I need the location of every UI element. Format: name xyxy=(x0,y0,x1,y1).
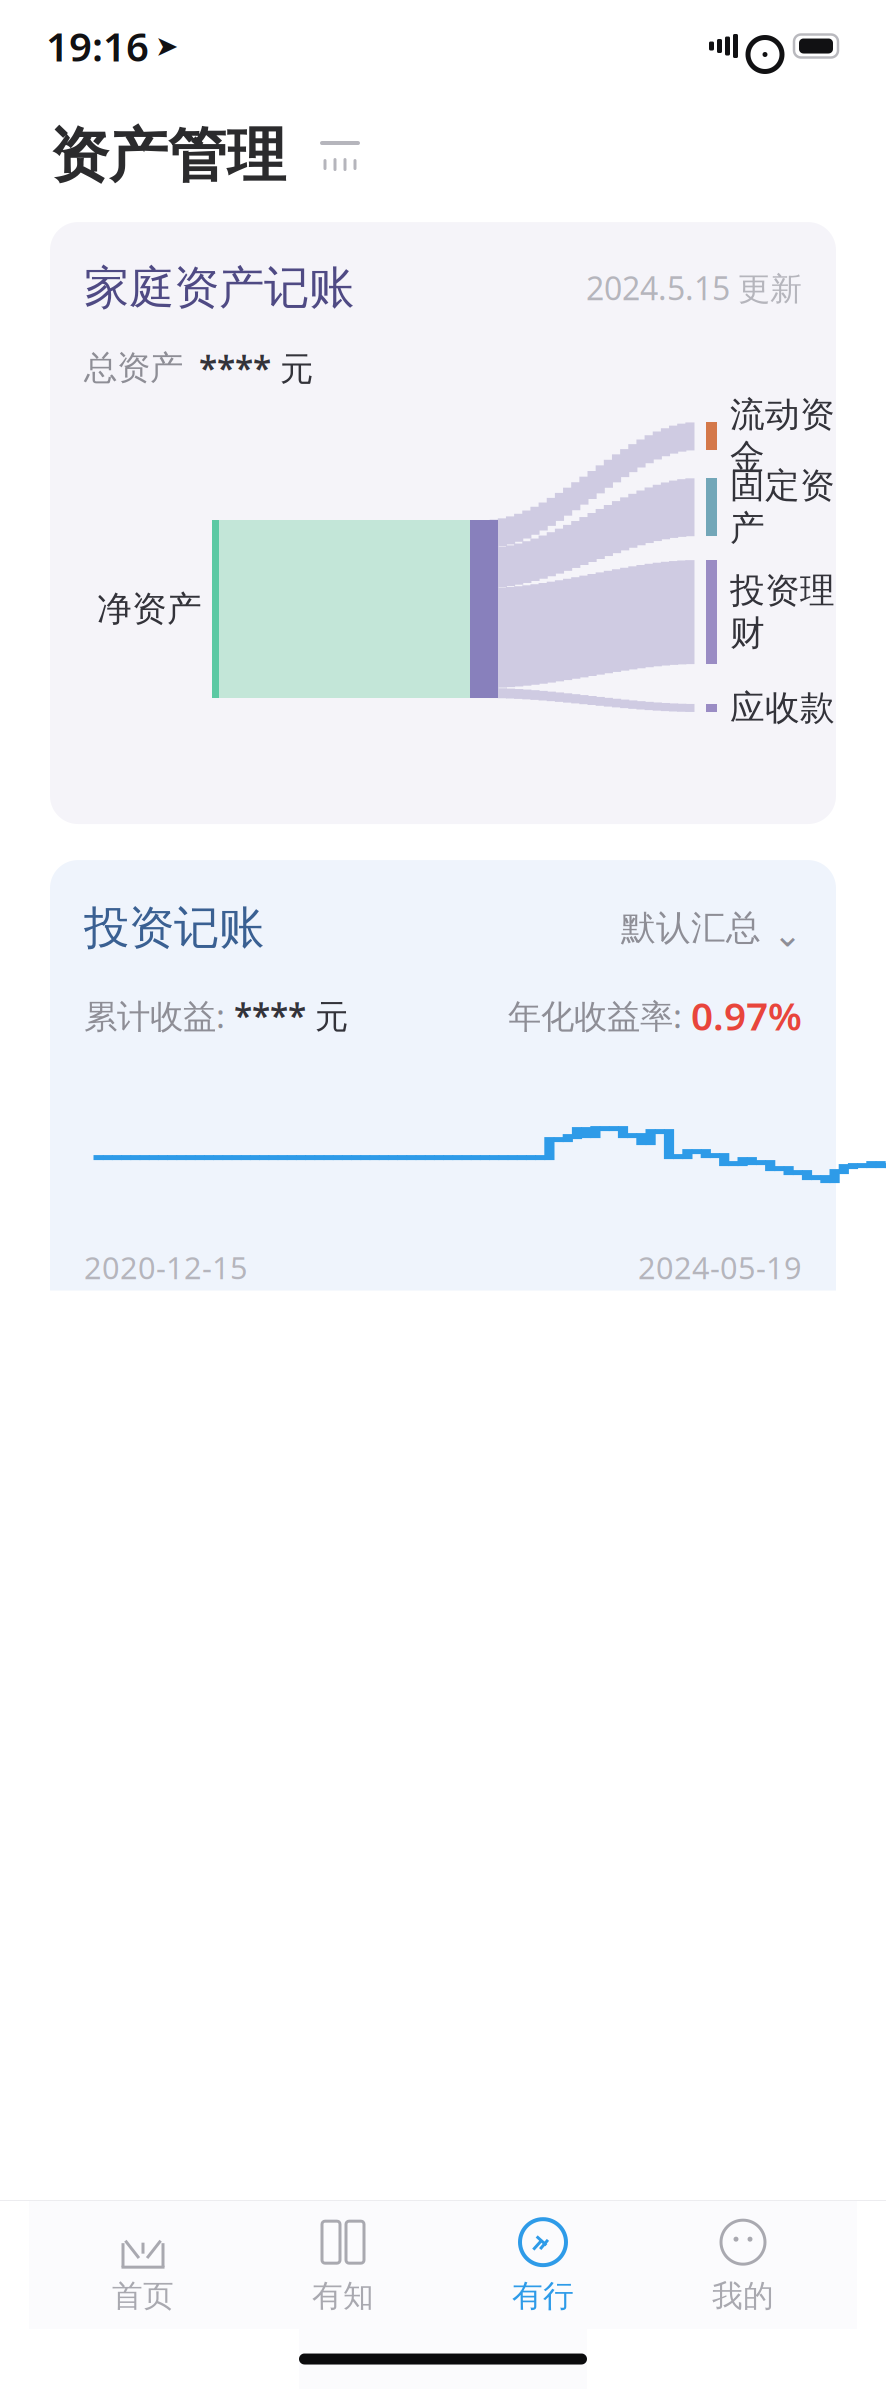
button[interactable]: 我的 xyxy=(643,2206,843,2324)
staticText: 流动资金 xyxy=(730,393,835,479)
staticText: 2024.5.15 更新 xyxy=(586,267,802,309)
staticText: 总资产 xyxy=(84,347,183,388)
staticText: 有行 xyxy=(512,2277,574,2315)
staticText: 累计收益: xyxy=(84,993,234,1038)
staticText: 19:16 xyxy=(46,19,149,72)
staticText: 净资产 xyxy=(97,588,202,630)
staticText: 0.97% xyxy=(691,990,802,1041)
staticText: 投资记账 xyxy=(84,900,264,956)
staticText: 投资理财 xyxy=(730,569,835,655)
staticText: 有知 xyxy=(312,2277,374,2315)
staticText: **** 元 xyxy=(199,346,313,390)
staticText: 年化收益率: xyxy=(508,993,691,1038)
staticText: ➤ xyxy=(155,30,178,62)
staticText: 我的 xyxy=(712,2277,774,2315)
staticText: 2024-05-19 xyxy=(638,1247,802,1288)
button[interactable]: 首页 xyxy=(43,2206,243,2324)
staticText: 资产管理 xyxy=(50,120,286,192)
staticText: 首页 xyxy=(112,2277,174,2315)
staticText: 默认汇总 xyxy=(621,907,761,949)
staticText: 固定资产 xyxy=(730,464,835,550)
button[interactable]: 家庭资产记账 xyxy=(50,222,836,824)
button[interactable]: 有知 xyxy=(243,2206,443,2324)
staticText: ⌄ xyxy=(773,915,802,954)
staticText: 2020-12-15 xyxy=(84,1247,248,1288)
button[interactable]: 投资记账 xyxy=(50,860,836,1395)
button[interactable]: 隐藏金额 xyxy=(308,134,372,178)
staticText: 应收款 xyxy=(730,687,835,729)
staticText: 家庭资产记账 xyxy=(84,260,354,316)
button[interactable]: 有行 xyxy=(443,2206,643,2324)
staticText: **** 元 xyxy=(234,993,348,1038)
